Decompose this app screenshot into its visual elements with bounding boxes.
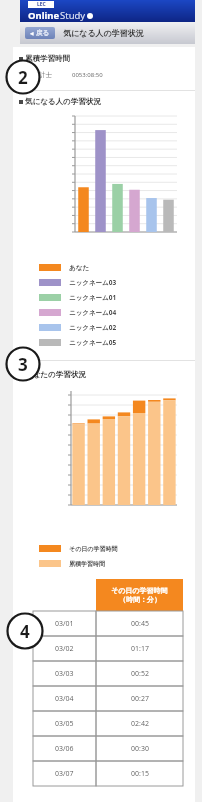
button[interactable]: ◀ (25, 27, 55, 39)
staticText: 03/03 (55, 669, 74, 679)
staticText: Study (60, 9, 86, 22)
staticText: ニックネーム02 (69, 323, 117, 332)
staticText: ニックネーム03 (69, 278, 117, 287)
staticText: 03/07 (55, 769, 74, 779)
staticText: ニックネーム04 (69, 308, 117, 317)
staticText: 02:42 (131, 719, 149, 729)
staticText: 00:15 (131, 769, 149, 779)
staticText: その日の学習時間 (69, 545, 118, 553)
staticText: Online (28, 9, 60, 22)
staticText: 累積学習時間 (69, 560, 105, 568)
staticText: 03/01 (55, 619, 74, 629)
staticText: 累積学習時間 (25, 54, 70, 63)
staticText: あなたの学習状況 (25, 370, 86, 379)
staticText: 03/04 (55, 694, 74, 704)
staticText: 0053:08:50 (72, 71, 103, 79)
staticText: 気になる人の学習状況 (63, 28, 144, 38)
staticText: 計士 (39, 71, 52, 79)
staticText: 00:27 (131, 694, 149, 704)
staticText: 4 (20, 620, 30, 643)
staticText: その日の学習時間 (111, 586, 168, 595)
staticText: 2 (18, 66, 28, 89)
staticText: 01:17 (131, 644, 149, 654)
staticText: 03/02 (55, 644, 74, 654)
staticText: 戻る (36, 29, 50, 37)
staticText: 00:30 (131, 744, 149, 754)
staticText: あなた (69, 264, 89, 272)
staticText: 00:52 (131, 669, 149, 679)
staticText: ニックネーム05 (69, 338, 117, 347)
staticText: LEC (37, 1, 46, 8)
staticText: 気になる人の学習状況 (25, 97, 101, 106)
staticText: ニックネーム01 (69, 293, 117, 302)
staticText: 00:45 (131, 619, 149, 629)
staticText: ◀ (30, 31, 34, 36)
staticText: 3 (18, 353, 28, 376)
staticText: 03/06 (55, 744, 74, 754)
staticText: （時間：分） (119, 595, 161, 604)
staticText: 03/05 (55, 719, 74, 729)
button[interactable]: その日の学習時間 (96, 579, 183, 611)
